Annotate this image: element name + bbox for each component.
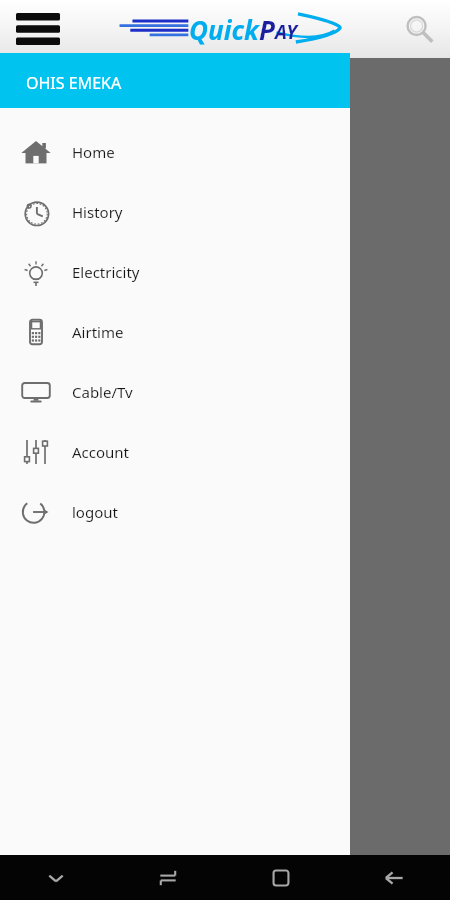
button[interactable]: History [0, 182, 350, 242]
button[interactable]: Back [337, 855, 450, 900]
staticText: Cable/Tv [72, 382, 133, 402]
button[interactable]: OHIS EMEKA [0, 58, 350, 108]
staticText: OHIS EMEKA [26, 72, 122, 94]
button[interactable]: Switch apps [112, 855, 224, 900]
button[interactable]: Electricity [0, 242, 350, 302]
staticText: Home [72, 142, 115, 162]
staticText: P [259, 12, 275, 47]
button[interactable]: Airtime [0, 302, 350, 362]
button[interactable]: Home [0, 122, 350, 182]
staticText: Electricity [72, 262, 140, 282]
staticText: Quick [189, 12, 259, 47]
button[interactable]: Account [0, 422, 350, 482]
button[interactable]: Search [394, 4, 444, 54]
staticText: History [72, 202, 123, 222]
staticText: Airtime [72, 322, 124, 342]
button[interactable]: Recents [224, 855, 337, 900]
button[interactable]: Open navigation drawer [10, 4, 66, 54]
staticText: Account [72, 442, 130, 462]
button[interactable]: Cable/Tv [0, 362, 350, 422]
button[interactable]: logout [0, 482, 350, 542]
button[interactable]: Hide keyboard [0, 855, 112, 900]
staticText: logout [72, 502, 118, 522]
staticText: AY [275, 19, 298, 45]
